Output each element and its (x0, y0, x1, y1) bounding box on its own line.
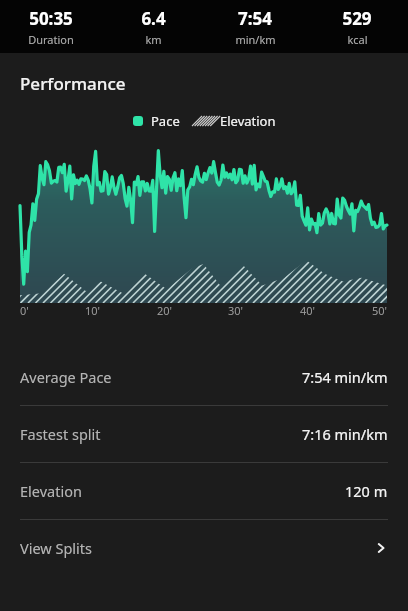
staticText: 7:54 min/km (302, 367, 388, 387)
staticText: 20' (157, 303, 173, 318)
staticText: 529 (342, 7, 372, 30)
button[interactable]: Elevation (0, 463, 408, 519)
staticText: Average Pace (20, 367, 112, 387)
staticText: 6.4 (141, 7, 166, 30)
other: View Splits (374, 541, 388, 555)
staticText: 40' (300, 303, 316, 318)
staticText: Fastest split (20, 424, 101, 444)
staticText: Pace (151, 112, 180, 130)
button[interactable]: Average Pace (0, 349, 408, 405)
staticText: Elevation (220, 112, 276, 130)
staticText: 50:35 (29, 7, 73, 30)
staticText: 120 m (345, 481, 388, 501)
staticText: Elevation (20, 481, 82, 501)
staticText: 7:16 min/km (302, 424, 388, 444)
staticText: 30' (228, 303, 244, 318)
staticText: 10' (85, 303, 101, 318)
button[interactable]: View Splits (0, 520, 408, 576)
staticText: kcal (347, 32, 368, 47)
button[interactable]: Fastest split (0, 406, 408, 462)
staticText: Duration (28, 32, 74, 47)
staticText: min/km (235, 32, 276, 47)
staticText: 0' (20, 303, 29, 318)
staticText: km (145, 32, 162, 47)
staticText: 50' (372, 303, 388, 318)
staticText: Performance (20, 72, 126, 95)
staticText: View Splits (20, 538, 93, 558)
staticText: 7:54 (238, 7, 272, 30)
